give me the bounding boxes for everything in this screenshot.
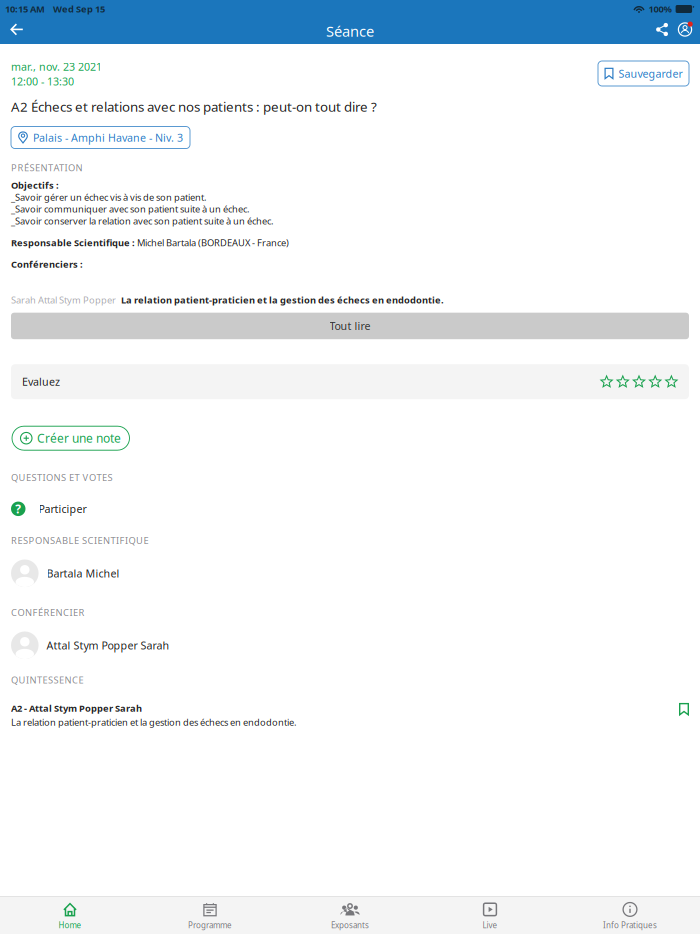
staticText: Info Pratiques <box>603 920 657 930</box>
staticText: Evaluez <box>22 375 60 389</box>
button[interactable]: Attal Stym Popper Sarah <box>11 631 689 659</box>
staticText: Responsable Scientifique : <box>11 236 137 249</box>
staticText: _Savoir communiquer avec son patient sui… <box>11 203 250 215</box>
staticText: QUINTESSENCE <box>11 674 83 686</box>
staticText: 10:15 AM <box>5 3 45 15</box>
button[interactable]: Account <box>674 16 696 42</box>
staticText: 100% <box>648 3 671 15</box>
staticText: Créer une note <box>37 430 121 446</box>
button[interactable]: Bartala Michel <box>11 559 689 587</box>
button[interactable]: Share <box>650 16 674 42</box>
button[interactable]: Bookmark <box>679 702 689 715</box>
staticText: mar., nov. 23 2021 <box>11 59 102 74</box>
staticText: Bartala Michel <box>47 566 120 580</box>
staticText: 12:00 - 13:30 <box>11 74 74 88</box>
button[interactable]: Info Pratiques <box>560 895 700 934</box>
staticText: La relation patient-praticien et la gest… <box>11 716 297 728</box>
staticText: Participer <box>38 502 86 516</box>
button[interactable]: Home <box>0 895 140 934</box>
staticText: Sauvegarder <box>618 66 682 81</box>
staticText: Michel Bartala (BORDEAUX - France) <box>137 236 289 249</box>
staticText: Home <box>58 920 81 930</box>
staticText: A2 - Attal Stym Popper Sarah <box>11 702 142 714</box>
button[interactable]: Tout lire <box>11 313 689 339</box>
staticText: ? <box>15 501 21 517</box>
staticText: Séance <box>326 21 374 41</box>
button[interactable]: Exposants <box>280 895 420 934</box>
button[interactable]: ? <box>11 502 689 516</box>
staticText: Programme <box>188 920 232 930</box>
staticText: CONFÉRENCIER <box>11 606 84 618</box>
staticText: _Savoir conserver la relation avec son p… <box>11 215 274 227</box>
staticText: Sarah Attal Stym Popper <box>11 294 116 306</box>
staticText: Tout lire <box>329 319 370 333</box>
staticText: Attal Stym Popper Sarah <box>47 638 170 652</box>
button[interactable]: Sauvegarder <box>598 63 689 88</box>
staticText: La relation patient-praticien et la gest… <box>121 294 444 306</box>
button[interactable]: Programme <box>140 895 280 934</box>
staticText: Wed Sep 15 <box>53 3 105 15</box>
staticText: PRÉSENTATION <box>11 161 82 174</box>
staticText: Palais - Amphi Havane - Niv. 3 <box>33 130 183 145</box>
staticText: Conférenciers : <box>11 258 83 270</box>
button[interactable]: Back <box>5 16 28 42</box>
button[interactable]: Palais - Amphi Havane - Niv. 3 <box>11 126 190 148</box>
button[interactable]: Créer une note <box>11 426 129 450</box>
staticText: RESPONSABLE SCIENTIFIQUE <box>11 534 148 546</box>
staticText: Objectifs : <box>11 179 59 191</box>
button[interactable]: Live <box>420 895 560 934</box>
staticText: A2 Échecs et relations avec nos patients… <box>11 98 377 115</box>
staticText: _Savoir gérer un échec vis à vis de son … <box>11 191 207 203</box>
staticText: Exposants <box>331 920 369 930</box>
staticText: QUESTIONS ET VOTES <box>11 471 112 484</box>
staticText: Live <box>482 920 497 930</box>
